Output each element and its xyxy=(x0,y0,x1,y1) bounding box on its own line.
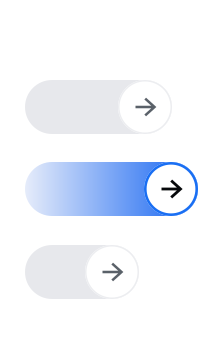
button[interactable]: Slide to continue xyxy=(25,245,139,299)
button[interactable]: Slide to confirm xyxy=(25,162,198,216)
button[interactable]: Slide to start xyxy=(25,80,172,134)
